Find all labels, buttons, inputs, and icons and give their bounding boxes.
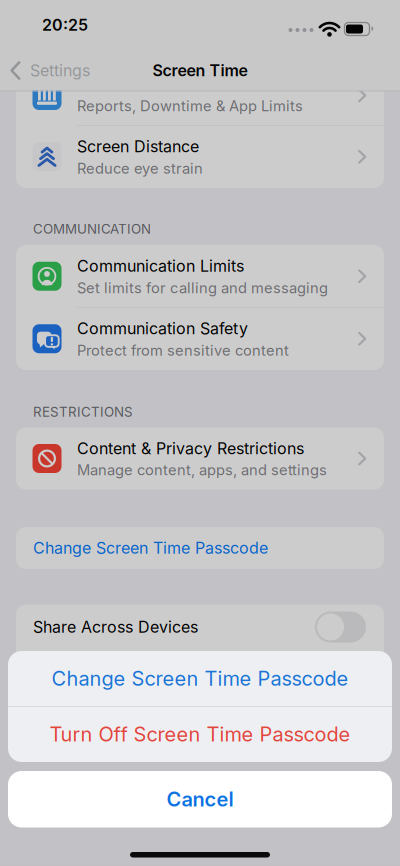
button[interactable]: Content & Privacy Restrictions <box>16 427 384 489</box>
staticText: Screen Distance <box>77 137 199 156</box>
button[interactable]: Screen Distance <box>16 125 384 188</box>
staticText: Content & Privacy Restrictions <box>77 439 304 458</box>
button[interactable]: Communication Limits <box>16 245 384 307</box>
staticText: Settings <box>30 61 90 80</box>
button[interactable]: Communication Safety <box>16 307 384 370</box>
button[interactable]: Change Screen Time Passcode <box>16 527 384 569</box>
button[interactable]: Cancel <box>8 771 392 827</box>
staticText: Set limits for calling and messaging <box>77 279 328 297</box>
staticText: 20:25 <box>42 16 88 34</box>
staticText: Manage content, apps, and settings <box>77 461 327 479</box>
staticText: Protect from sensitive content <box>77 342 289 359</box>
staticText: Screen Time <box>152 61 247 80</box>
button[interactable]: Change Screen Time Passcode <box>8 651 392 706</box>
staticText: Turn Off Screen Time Passcode <box>49 722 350 746</box>
staticText: COMMUNICATION <box>33 221 151 237</box>
staticText: Change Screen Time Passcode <box>51 667 348 690</box>
staticText: Reports, Downtime & App Limits <box>77 97 303 115</box>
button[interactable]: Turn Off Screen Time Passcode <box>8 707 392 762</box>
staticText: Communication Limits <box>77 257 244 275</box>
staticText: Communication Safety <box>77 319 248 338</box>
staticText: Cancel <box>166 787 233 811</box>
button[interactable]: Share Across Devices <box>315 611 366 642</box>
button[interactable]: Reports, Downtime & App Limits <box>16 81 384 125</box>
button[interactable]: Back <box>8 55 108 85</box>
staticText: Reduce eye strain <box>77 160 203 177</box>
staticText: Change Screen Time Passcode <box>33 539 268 557</box>
staticText: RESTRICTIONS <box>33 404 133 420</box>
staticText: Share Across Devices <box>33 618 198 636</box>
